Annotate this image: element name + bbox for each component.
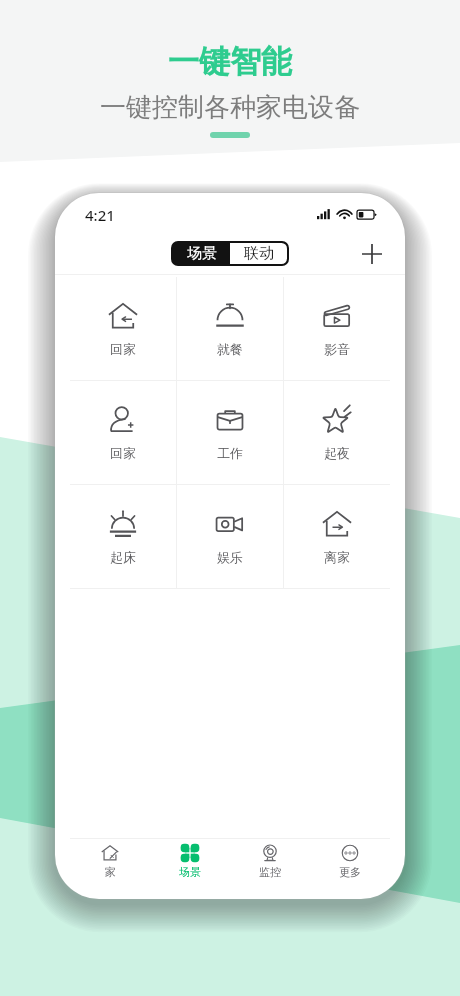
staticText: 娱乐: [217, 549, 243, 565]
staticText: 场景: [179, 865, 201, 879]
button[interactable]: 场景: [173, 243, 230, 264]
staticText: 回家: [110, 445, 136, 461]
button[interactable]: 更多: [310, 839, 390, 883]
button[interactable]: Add scene: [357, 239, 387, 269]
staticText: 联动: [244, 244, 274, 263]
button[interactable]: 影音: [284, 277, 390, 380]
staticText: 一键控制各种家电设备: [100, 91, 360, 124]
button[interactable]: 监控: [230, 839, 310, 883]
staticText: 场景: [187, 244, 217, 263]
staticText: 家: [105, 865, 116, 879]
staticText: 离家: [324, 549, 350, 565]
staticText: 4:21: [85, 205, 115, 225]
staticText: 起夜: [324, 445, 350, 461]
button[interactable]: 工作: [177, 381, 283, 484]
button[interactable]: 回家: [70, 277, 176, 380]
staticText: 一键智能: [168, 42, 292, 81]
staticText: 工作: [217, 445, 243, 461]
button[interactable]: 家: [70, 839, 150, 883]
button[interactable]: 娱乐: [177, 485, 283, 588]
staticText: 回家: [110, 341, 136, 357]
button[interactable]: 联动: [230, 243, 287, 264]
staticText: 起床: [110, 549, 136, 565]
button[interactable]: 场景: [150, 839, 230, 883]
button[interactable]: 离家: [284, 485, 390, 588]
staticText: 更多: [339, 865, 361, 879]
staticText: 就餐: [217, 341, 243, 357]
button[interactable]: 回家: [70, 381, 176, 484]
staticText: 监控: [259, 865, 281, 879]
button[interactable]: 就餐: [177, 277, 283, 380]
button[interactable]: 起床: [70, 485, 176, 588]
button[interactable]: 起夜: [284, 381, 390, 484]
staticText: 影音: [324, 341, 350, 357]
